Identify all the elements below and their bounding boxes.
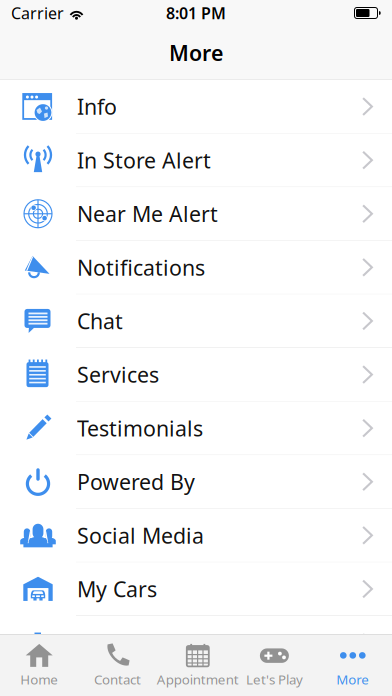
button[interactable]: Contact (78, 634, 157, 696)
button[interactable]: Info (0, 80, 392, 134)
staticText: Notifications (77, 253, 205, 281)
button[interactable]: Notifications (0, 241, 392, 294)
button[interactable]: Services (0, 348, 392, 402)
button[interactable]: Let's Play (235, 634, 314, 696)
staticText: Carrier (11, 2, 64, 24)
button[interactable]: Near Me Alert (0, 187, 392, 241)
button[interactable]: More (314, 634, 392, 696)
staticText: Stats (77, 628, 127, 657)
staticText: Near Me Alert (77, 200, 218, 228)
button[interactable]: Home (0, 634, 78, 696)
button[interactable]: Stats (0, 616, 392, 670)
staticText: Chat (77, 307, 123, 335)
staticText: Services (77, 360, 159, 389)
staticText: Let's Play (246, 670, 303, 688)
staticText: In Store Alert (77, 146, 211, 174)
button[interactable]: Chat (0, 294, 392, 348)
staticText: Info (77, 92, 117, 121)
staticText: Social Media (77, 521, 204, 549)
staticText: Testimonials (77, 414, 203, 442)
button[interactable]: In Store Alert (0, 134, 392, 187)
staticText: My Cars (77, 575, 157, 603)
staticText: More (169, 39, 223, 67)
button[interactable]: Appointment (157, 634, 235, 696)
staticText: 8:01 PM (166, 2, 226, 24)
staticText: More (336, 670, 369, 688)
button[interactable]: Social Media (0, 509, 392, 562)
button[interactable]: Powered By (0, 455, 392, 509)
staticText: Contact (94, 670, 141, 688)
staticText: Powered By (77, 468, 195, 496)
button[interactable]: My Cars (0, 562, 392, 616)
staticText: Home (20, 670, 58, 688)
button[interactable]: Testimonials (0, 402, 392, 455)
staticText: Appointment (157, 670, 239, 688)
